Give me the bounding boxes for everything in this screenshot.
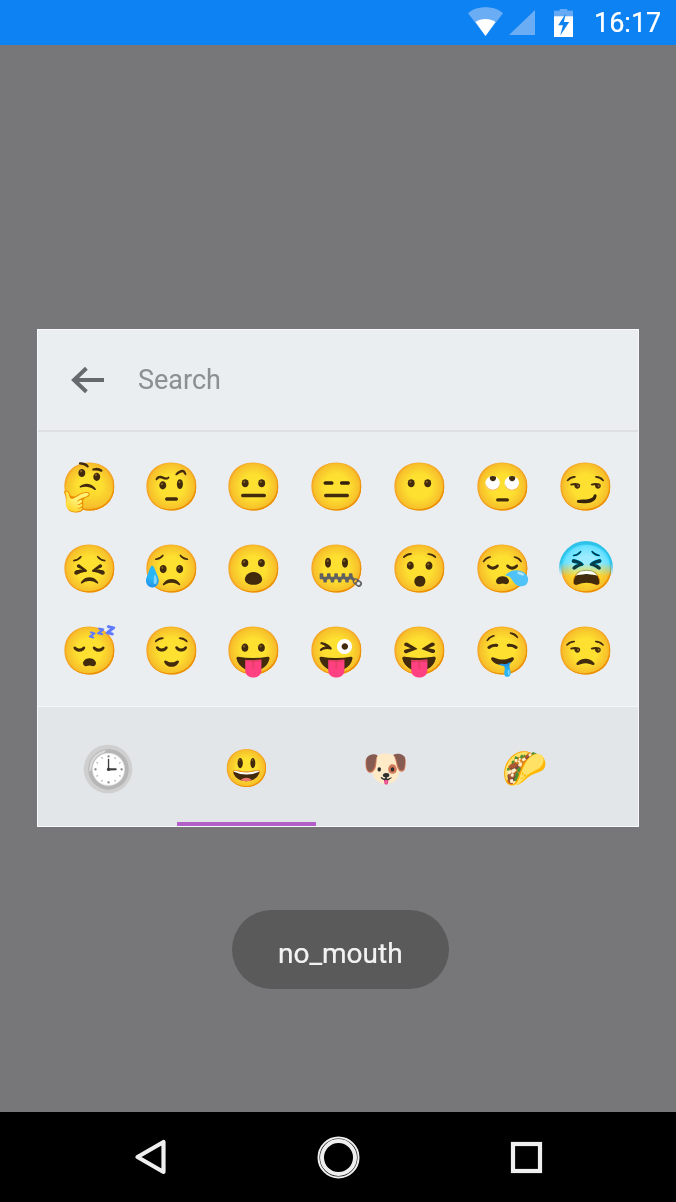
button[interactable]: Back (56, 1112, 244, 1202)
button[interactable]: Back (38, 330, 638, 430)
staticText: 😫 (557, 541, 616, 596)
button[interactable]: Recent (38, 711, 177, 826)
staticText: 🕒 (85, 748, 132, 791)
button[interactable]: Emoji (378, 445, 461, 527)
staticText: 😃 (223, 747, 270, 790)
button[interactable]: Emoji (295, 609, 378, 691)
staticText: 😪 (473, 541, 532, 596)
staticText: 😛 (224, 623, 283, 678)
staticText: 🤨 (142, 459, 201, 514)
button[interactable]: Emoji (544, 527, 627, 609)
button[interactable]: Emoji (295, 527, 378, 609)
button[interactable]: Emoji (378, 609, 461, 691)
staticText: 😝 (390, 623, 449, 678)
staticText: 😥 (142, 541, 201, 596)
button[interactable]: Emoji (461, 445, 544, 527)
button[interactable]: Emoji (48, 527, 130, 609)
staticText: 😌 (142, 623, 201, 678)
staticText: 🤔 (60, 459, 119, 514)
staticText: 😴 (60, 623, 119, 678)
staticText: 🐶 (362, 747, 409, 790)
staticText: Search (138, 364, 221, 396)
button[interactable]: Emoji (212, 445, 295, 527)
button[interactable]: Recent apps (432, 1112, 620, 1202)
button[interactable]: Smileys (177, 711, 316, 826)
staticText: 😯 (390, 541, 449, 596)
button[interactable]: Emoji (295, 445, 378, 527)
staticText: 🌮 (501, 747, 548, 790)
button[interactable]: Emoji (378, 527, 461, 609)
button[interactable]: Emoji (48, 609, 130, 691)
staticText: 😑 (307, 459, 366, 514)
button[interactable]: Emoji (212, 609, 295, 691)
button[interactable]: Emoji (461, 527, 544, 609)
staticText: 😏 (556, 459, 615, 514)
button[interactable]: Emoji (544, 609, 627, 691)
staticText: 😐 (224, 459, 283, 514)
staticText: 😒 (556, 623, 615, 678)
staticText: 16:17 (594, 7, 662, 39)
staticText: 😮 (224, 541, 283, 596)
staticText: 😶 (390, 459, 449, 514)
button[interactable]: Emoji (48, 445, 130, 527)
button[interactable]: Food (455, 711, 594, 826)
button[interactable]: Home (244, 1112, 432, 1202)
staticText: 🙄 (473, 459, 532, 514)
button[interactable]: Emoji (130, 445, 212, 527)
button[interactable]: Emoji (130, 527, 212, 609)
button[interactable]: Emoji (130, 609, 212, 691)
button[interactable]: Animals (316, 711, 455, 826)
button[interactable]: Back (38, 330, 138, 430)
staticText: no_mouth (278, 937, 403, 970)
staticText: 🤤 (473, 623, 532, 678)
button[interactable]: Emoji (544, 445, 627, 527)
staticText: 😣 (60, 541, 119, 596)
button[interactable]: Emoji (212, 527, 295, 609)
button[interactable]: no_mouth (232, 910, 449, 989)
staticText: 🤐 (307, 541, 366, 596)
staticText: 😜 (307, 623, 366, 678)
button[interactable]: Emoji (461, 609, 544, 691)
